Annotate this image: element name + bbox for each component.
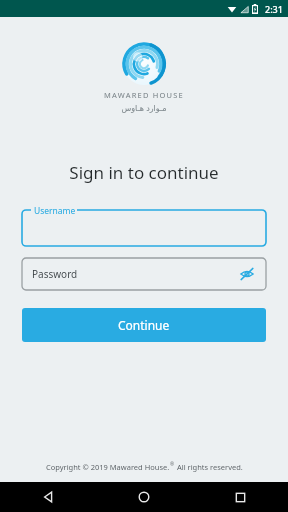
button[interactable]: Home <box>96 482 192 512</box>
staticText: 2:31 <box>265 3 283 15</box>
staticText: Continue <box>118 317 170 333</box>
button[interactable]: Continue <box>22 308 266 342</box>
button[interactable]: Back <box>0 482 96 512</box>
staticText: مـوارد هـاوس <box>121 102 167 113</box>
button[interactable]: Password <box>22 258 266 290</box>
button[interactable]: Username <box>22 210 266 246</box>
button[interactable]: Recent apps <box>192 482 288 512</box>
staticText: MAWARED HOUSE <box>104 90 184 100</box>
staticText: Password <box>32 267 78 281</box>
staticText: Copyright © 2019 Mawared House. <box>46 462 170 472</box>
button[interactable]: Show password <box>238 265 256 283</box>
staticText: Sign in to continue <box>69 161 219 184</box>
staticText: All rights reserved. <box>175 462 243 472</box>
staticText: ® <box>170 461 175 468</box>
staticText: Username <box>34 205 76 217</box>
